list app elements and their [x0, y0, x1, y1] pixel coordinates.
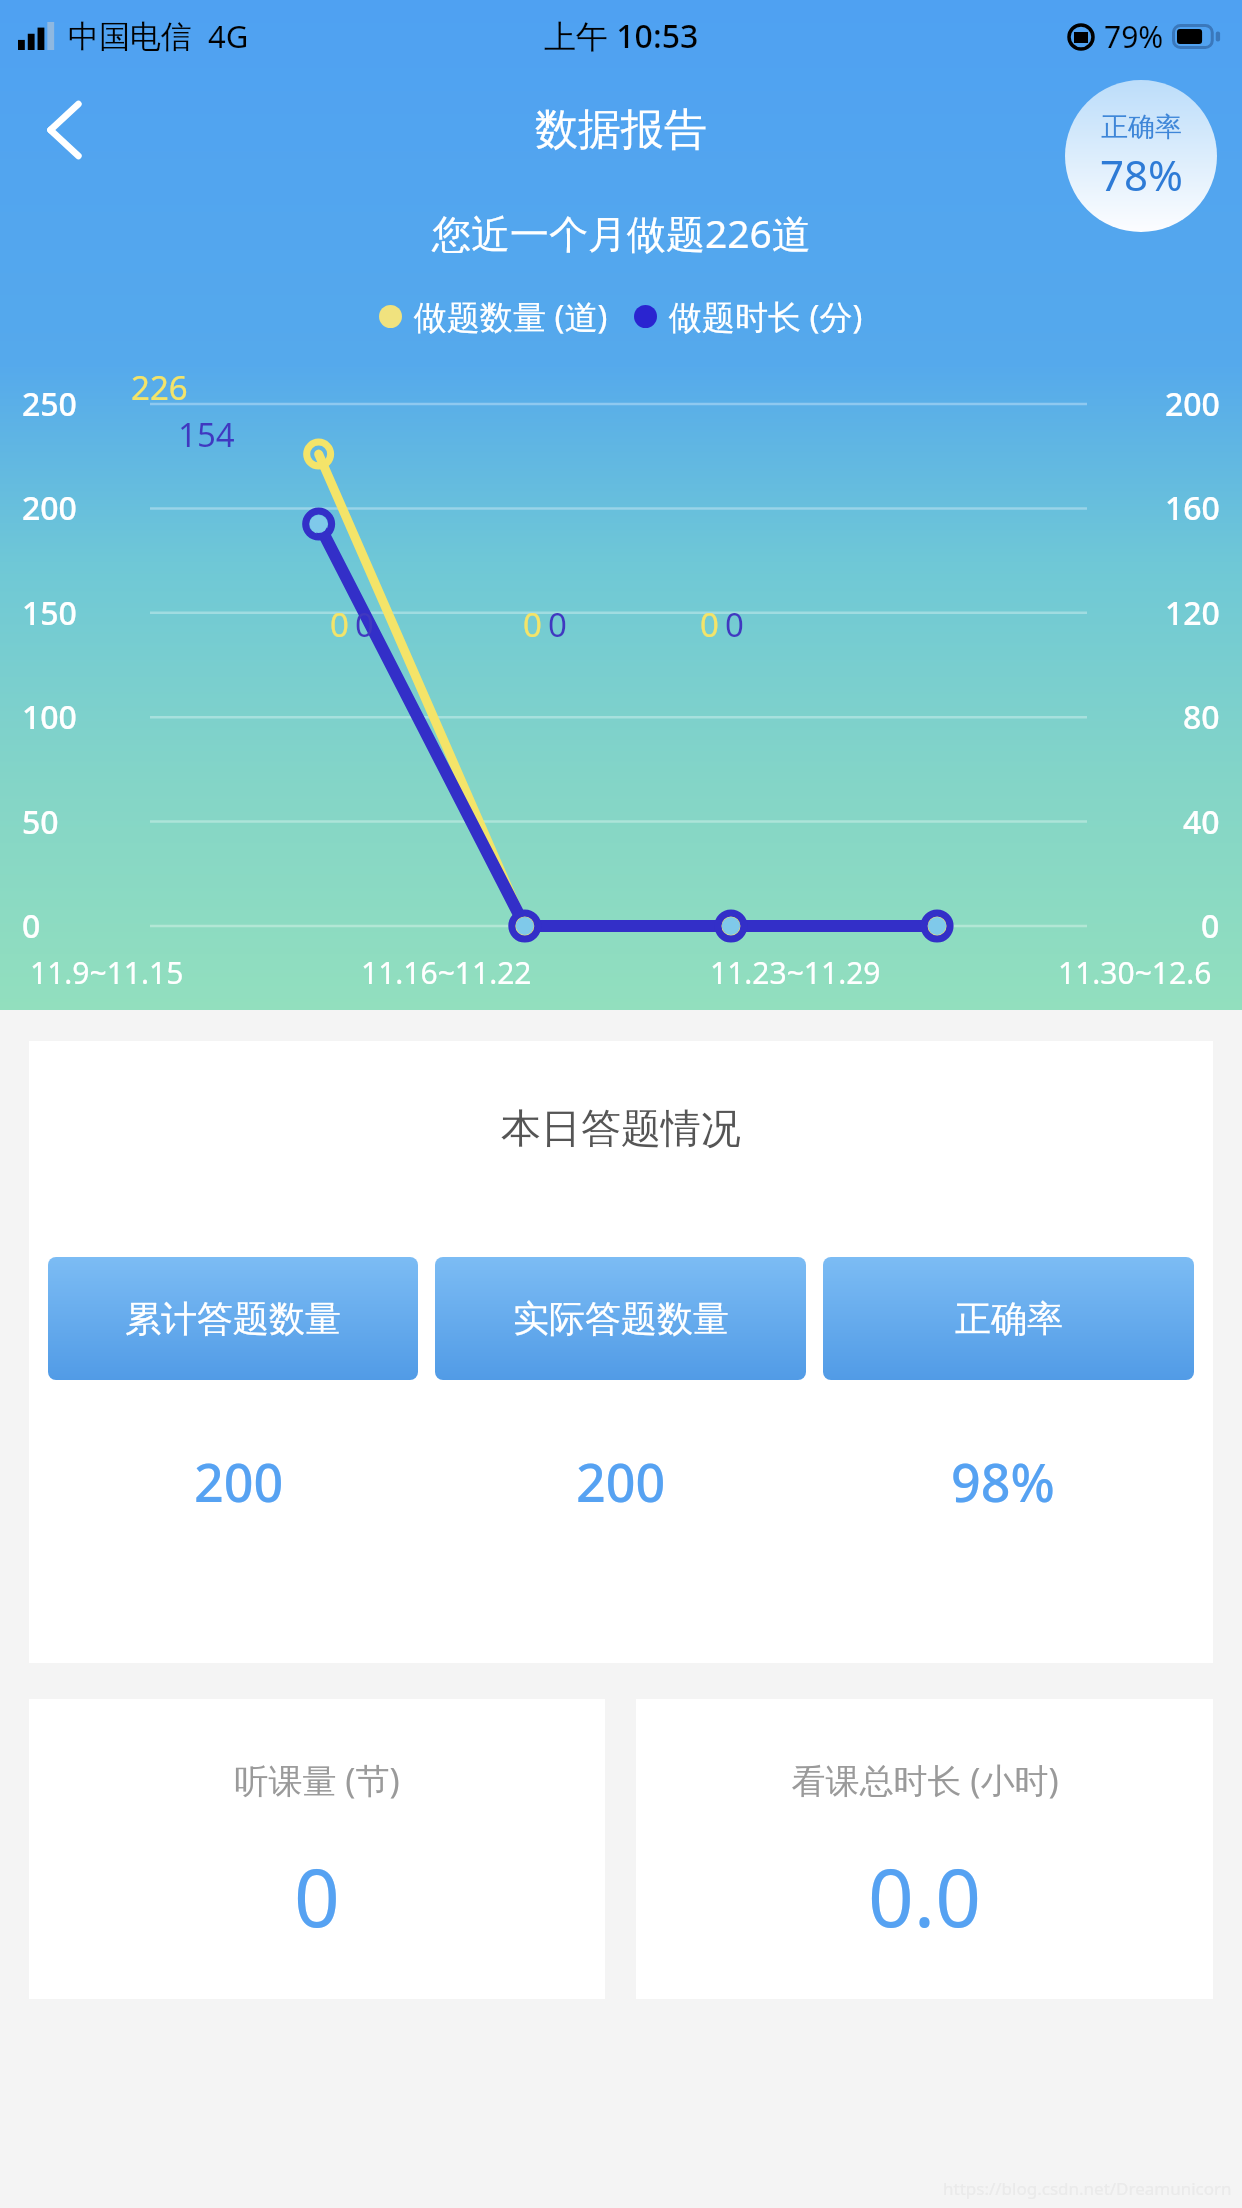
staticText: 200	[22, 486, 77, 530]
button[interactable]: 正确率	[823, 1257, 1194, 1380]
staticText: 正确率	[1101, 110, 1182, 144]
staticText: 0	[1201, 904, 1220, 948]
staticText: 79%	[1104, 16, 1164, 57]
staticText: 80	[1183, 695, 1220, 739]
staticText: 您近一个月做题226道	[432, 206, 811, 259]
staticText: 160	[1165, 486, 1220, 530]
button[interactable]: 实际答题数量	[435, 1257, 806, 1380]
button[interactable]: 累计答题数量	[48, 1257, 418, 1380]
staticText: 226	[131, 365, 188, 410]
staticText: 4G	[208, 15, 249, 57]
staticText: 实际答题数量	[513, 1296, 729, 1341]
staticText: 0	[523, 602, 542, 647]
staticText: 150	[22, 591, 77, 635]
staticText: 做题时长 (分)	[669, 294, 863, 339]
staticText: 98%	[951, 1446, 1055, 1517]
staticText: 100	[22, 695, 77, 739]
button[interactable]: 正确率	[1065, 80, 1217, 232]
staticText: 200	[576, 1446, 666, 1517]
staticText: 累计答题数量	[125, 1296, 341, 1341]
staticText: 200	[194, 1446, 284, 1517]
staticText: 0	[355, 602, 374, 647]
staticText: 上午 10:53	[544, 14, 699, 58]
staticText: 40	[1183, 800, 1220, 844]
staticText: 250	[22, 382, 77, 426]
staticText: 0.0	[868, 1841, 981, 1950]
staticText: 0	[725, 602, 744, 647]
staticText: 78%	[1100, 146, 1183, 203]
staticText: 120	[1165, 591, 1220, 635]
staticText: 11.16~11.22	[361, 952, 532, 993]
staticText: 0	[700, 602, 719, 647]
staticText: 正确率	[955, 1296, 1063, 1341]
staticText: 11.9~11.15	[30, 952, 184, 993]
staticText: 数据报告	[535, 103, 707, 157]
staticText: 看课总时长 (小时)	[791, 1757, 1059, 1803]
staticText: 50	[22, 800, 59, 844]
staticText: 11.23~11.29	[710, 952, 881, 993]
staticText: 0	[294, 1841, 340, 1950]
staticText: https://blog.csdn.net/Dreamunicorn	[943, 2177, 1232, 2200]
button[interactable]: 看课总时长 (小时)	[636, 1699, 1213, 1999]
button[interactable]: Back	[20, 94, 92, 166]
staticText: 做题数量 (道)	[414, 294, 608, 339]
staticText: 200	[1165, 382, 1220, 426]
staticText: 154	[178, 412, 235, 457]
staticText: 0	[22, 904, 41, 948]
staticText: 11.30~12.6	[1058, 952, 1212, 993]
staticText: 0	[548, 602, 567, 647]
staticText: 听课量 (节)	[234, 1757, 400, 1803]
button[interactable]: 听课量 (节)	[29, 1699, 605, 1999]
staticText: 中国电信	[68, 17, 192, 56]
staticText: 本日答题情况	[501, 1103, 741, 1153]
staticText: 0	[330, 602, 349, 647]
